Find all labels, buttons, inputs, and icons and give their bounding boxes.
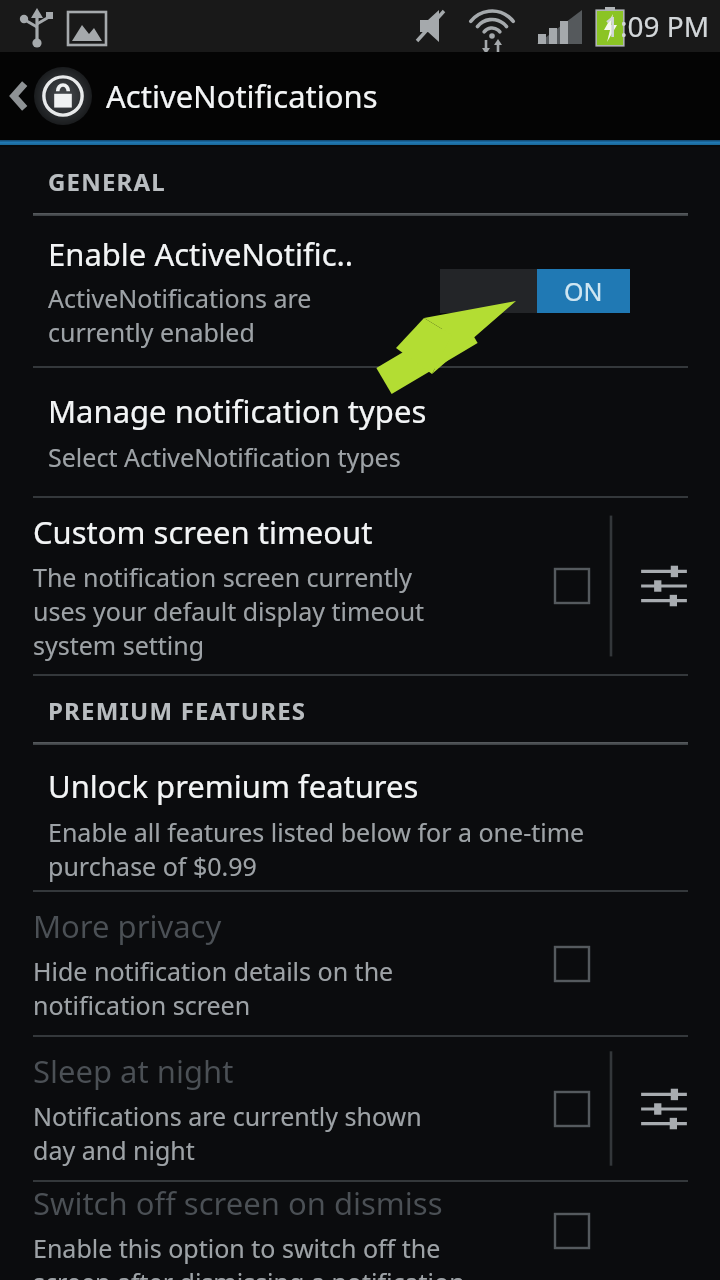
staticText: Notifications are currently shown day an… <box>33 1099 422 1167</box>
staticText: The notification screen currently uses y… <box>33 560 425 662</box>
button[interactable]: Custom screen timeout <box>0 511 536 662</box>
button[interactable]: Enable ActiveNotific.. <box>0 216 720 366</box>
staticText: Unlock premium features <box>48 765 419 807</box>
staticText: Switch off screen on dismiss <box>33 1182 443 1224</box>
button[interactable]: Sleep at night settings <box>626 1071 702 1147</box>
staticText: ON <box>564 274 603 308</box>
staticText: Select ActiveNotification types <box>48 440 401 474</box>
staticText: Enable all features listed below for a o… <box>48 815 585 883</box>
staticText: Hide notification details on the notific… <box>33 954 394 1022</box>
button[interactable]: Custom screen timeout settings <box>626 548 702 624</box>
staticText: More privacy <box>33 905 222 947</box>
button[interactable]: Enable ActiveNotifications toggle, on <box>440 269 630 313</box>
button[interactable]: More privacy <box>0 905 536 1022</box>
staticText: GENERAL <box>48 165 166 198</box>
staticText: Manage notification types <box>48 390 427 432</box>
button[interactable]: Switch off screen on dismiss <box>0 1182 536 1280</box>
staticText: Custom screen timeout <box>33 511 373 553</box>
staticText: 1:09 PM <box>604 7 710 45</box>
staticText: ActiveNotifications are currently enable… <box>48 281 312 349</box>
button[interactable]: Custom screen timeout checkbox, unchecke… <box>536 498 608 674</box>
button[interactable]: Switch off screen on dismiss checkbox, u… <box>536 1182 608 1280</box>
staticText: Sleep at night <box>33 1050 234 1092</box>
button[interactable]: Sleep at night checkbox, unchecked <box>536 1037 608 1180</box>
staticText: ActiveNotifications <box>106 75 378 117</box>
button[interactable]: More privacy checkbox, unchecked <box>536 892 608 1035</box>
button[interactable]: Unlock premium features <box>0 745 720 890</box>
button[interactable]: Manage notification types <box>0 368 720 496</box>
staticText: Enable this option to switch off the scr… <box>33 1231 465 1280</box>
staticText: PREMIUM FEATURES <box>48 694 307 727</box>
button[interactable]: Sleep at night <box>0 1050 536 1167</box>
staticText: Enable ActiveNotific.. <box>48 233 354 275</box>
button[interactable]: Navigate up <box>0 52 720 140</box>
